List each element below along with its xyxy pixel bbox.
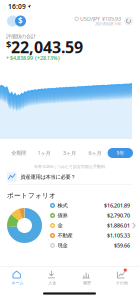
button[interactable]: 1ヶ月 [31,148,57,158]
staticText: 不動産 [57,232,72,239]
staticText: 現金 [57,242,67,249]
staticText: 年率 0.25%｜つみたて設定可能な手数料 [34,164,105,169]
button[interactable]: 入金 [35,267,70,287]
button[interactable]: 株式 [0,200,139,250]
staticText: 株式 [57,202,67,209]
staticText: $2,790.70 [107,212,130,219]
staticText: ホーム [11,280,23,285]
staticText: 履歴 [83,280,91,285]
staticText: $ [6,38,11,51]
staticText: 全期間 [11,150,26,156]
staticText: 入金 [48,280,56,285]
staticText: 16:09 [8,2,26,11]
button[interactable]: 全期間 [6,148,31,158]
staticText: $1,886.01 [107,222,130,229]
staticText: 金 [57,222,62,229]
staticText: $59.66 [114,242,130,249]
button[interactable]: ホーム [0,267,35,287]
button[interactable]: 履歴 [69,267,104,287]
staticText: $ [18,16,23,26]
staticText: $16,201.89 [104,202,130,209]
staticText: $1,105.33 [107,232,130,239]
staticText: その他 [116,280,128,285]
button[interactable]: 6ヶ月 [82,148,108,158]
staticText: 評価額の合計 [6,33,36,40]
button[interactable]: Refresh exchange rate [123,15,134,26]
staticText: ポートフォリオ [7,191,56,200]
staticText: 6ヶ月 [88,149,101,157]
staticText: 3ヶ月 [63,149,76,157]
staticText: + $4,838.99 (+28.13%) [6,54,60,62]
staticText: 資産運用は本当に必要？ [20,174,75,180]
staticText: USD/JPY ¥105.93 [80,15,121,22]
staticText: 1ヶ月 [38,149,51,157]
button[interactable]: Accounts [3,15,22,26]
staticText: 債券 [57,212,67,219]
button[interactable]: その他 [104,267,139,287]
staticText: 1年 [116,149,124,157]
button[interactable]: 1年 [108,148,133,158]
staticText: 2021/03/28 1:00 [95,21,121,26]
button[interactable]: 資産運用は本当に必要？ [0,170,139,184]
button[interactable]: 3ヶ月 [57,148,82,158]
staticText: 22,043.59 [11,36,83,58]
